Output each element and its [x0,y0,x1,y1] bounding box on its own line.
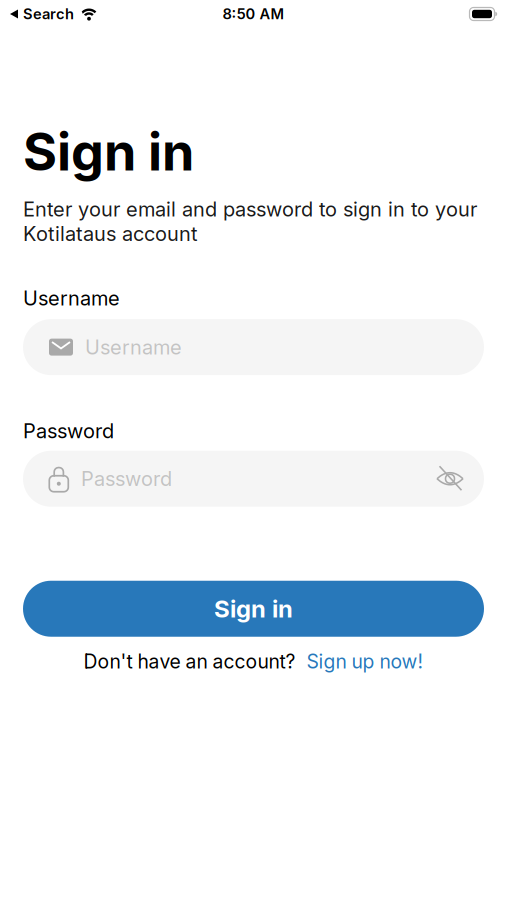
staticText: Username [23,286,120,310]
button[interactable]: Password text field [23,451,484,507]
staticText: Sign in [214,595,293,623]
staticText: Username [85,335,182,359]
staticText: Search [23,5,74,23]
staticText: Sign up now! [306,650,423,673]
staticText: Sign in [23,121,194,182]
button[interactable]: Username text field [23,319,484,375]
staticText: Password [23,419,114,443]
staticText: 8:50 AM [222,5,284,23]
button[interactable]: Sign up now! [306,650,423,673]
button[interactable]: Back to Search [10,5,99,23]
staticText: Don't have an account? [83,650,295,673]
staticText: Enter your email and password to sign in… [23,197,477,245]
staticText: Password [81,467,172,490]
button[interactable]: Sign in [23,581,484,637]
button[interactable]: Show password [436,470,464,487]
